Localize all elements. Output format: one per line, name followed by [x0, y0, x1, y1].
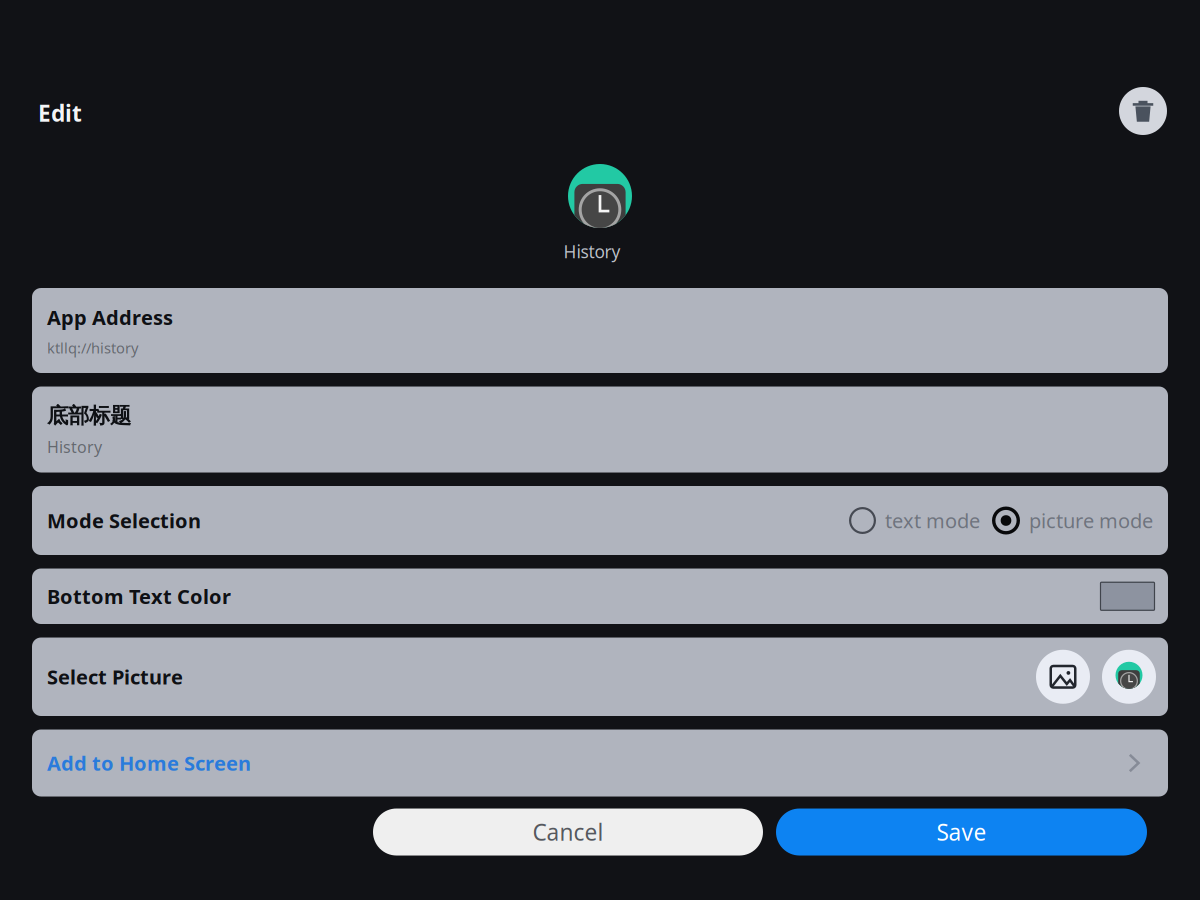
- staticText: 底部标题: [47, 402, 131, 429]
- button[interactable]: text mode: [849, 507, 980, 534]
- button[interactable]: 底部标题: [32, 386, 1168, 472]
- button[interactable]: Choose photo: [1036, 650, 1090, 704]
- staticText: picture mode: [1029, 507, 1153, 534]
- staticText: Edit: [38, 98, 82, 128]
- button[interactable]: Bottom text colour: [1100, 582, 1155, 611]
- staticText: Add to Home Screen: [47, 750, 251, 776]
- staticText: History: [47, 436, 102, 457]
- staticText: App Address: [47, 304, 173, 331]
- button[interactable]: Delete: [1119, 89, 1167, 137]
- staticText: Select Picture: [47, 663, 183, 690]
- button[interactable]: App Address: [32, 288, 1168, 373]
- button[interactable]: Add to Home Screen: [32, 729, 1168, 796]
- staticText: Save: [936, 817, 986, 847]
- staticText: ktllq://history: [47, 338, 138, 358]
- staticText: text mode: [885, 507, 980, 534]
- staticText: Mode Selection: [47, 507, 201, 534]
- staticText: Cancel: [532, 817, 603, 847]
- button[interactable]: Cancel: [373, 808, 763, 855]
- staticText: Bottom Text Color: [47, 583, 231, 610]
- staticText: History: [563, 240, 620, 263]
- button[interactable]: Save: [776, 808, 1147, 855]
- button[interactable]: Use app icon: [1102, 650, 1156, 704]
- button[interactable]: picture mode: [992, 506, 1153, 534]
